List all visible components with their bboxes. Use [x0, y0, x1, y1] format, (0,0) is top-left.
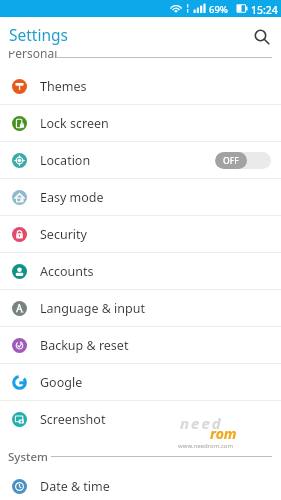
button[interactable]: Google — [0, 364, 281, 401]
staticText: Personal — [8, 51, 58, 61]
staticText: Backup & reset — [40, 337, 129, 354]
staticText: 15:24 — [251, 3, 278, 17]
staticText: Easy mode — [40, 189, 104, 206]
button[interactable]: Language & input — [0, 290, 281, 327]
button[interactable]: Easy mode — [0, 179, 281, 216]
button[interactable]: Location — [0, 142, 281, 179]
staticText: Lock screen — [40, 115, 109, 132]
button[interactable]: Lock screen — [0, 105, 281, 142]
staticText: Settings — [9, 24, 68, 45]
staticText: 69% — [209, 3, 228, 16]
staticText: rom — [210, 424, 237, 443]
button[interactable]: Themes — [0, 68, 281, 105]
button[interactable]: Backup & reset — [0, 327, 281, 364]
staticText: Google — [40, 374, 83, 391]
staticText: OFF — [223, 155, 239, 167]
staticText: need — [180, 413, 223, 433]
staticText: Language & input — [40, 300, 145, 317]
button[interactable]: OFF — [215, 152, 271, 169]
button[interactable]: Security — [0, 216, 281, 253]
button[interactable]: Date & time — [0, 473, 281, 500]
staticText: System — [8, 449, 48, 465]
staticText: Security — [40, 226, 87, 243]
button[interactable] — [249, 26, 275, 51]
staticText: Screenshot — [40, 411, 106, 428]
staticText: Date & time — [40, 478, 110, 495]
staticText: Location — [40, 152, 91, 169]
staticText: Accounts — [40, 263, 94, 280]
button[interactable]: Accounts — [0, 253, 281, 290]
staticText: Themes — [40, 78, 87, 95]
button[interactable]: Screenshot — [0, 401, 281, 438]
staticText: www.needrom.com — [178, 442, 234, 450]
